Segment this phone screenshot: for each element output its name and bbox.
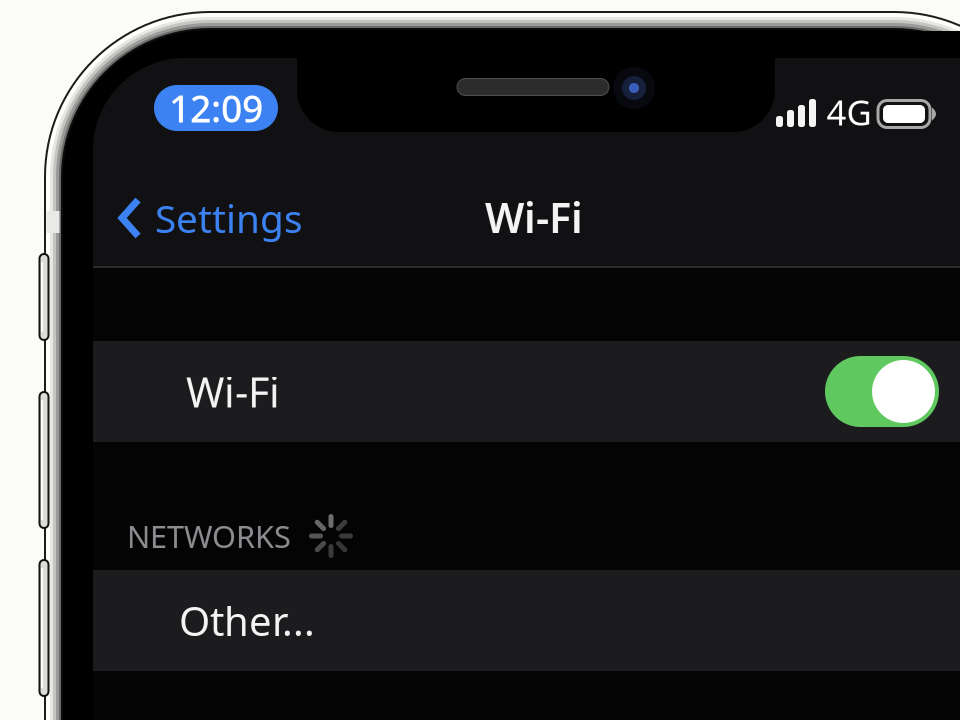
staticText: Settings [155, 192, 303, 244]
button[interactable]: Other... [93, 570, 960, 671]
button[interactable]: Wi-Fi [93, 341, 960, 442]
staticText: 4G [826, 89, 871, 135]
staticText: 12:09 [169, 83, 263, 133]
button[interactable]: Settings [111, 180, 309, 256]
staticText: Wi-Fi [186, 364, 280, 419]
staticText: NETWORKS [127, 516, 291, 556]
staticText: Other... [179, 594, 315, 647]
staticText: Wi-Fi [485, 190, 583, 244]
